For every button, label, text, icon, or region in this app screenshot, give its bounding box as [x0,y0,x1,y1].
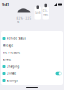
staticText: Settings [6,79,17,82]
staticText: Tire Pressure [2,51,20,54]
staticText: Charging [6,65,19,68]
staticText: Lock [35,11,40,14]
button[interactable]: Climate [1,70,63,77]
button[interactable]: Climate [42,6,49,19]
staticText: 9:41 [2,2,9,7]
button[interactable]: Vehicle Status [1,35,63,42]
button[interactable]: Settings [1,77,63,84]
staticText: Climate [6,72,16,75]
staticText: Vehicle Status [6,37,25,40]
button[interactable]: Tire Pressure [1,49,63,56]
button[interactable]: Charging [1,63,63,70]
staticText: 82% · 225 mi [16,17,31,24]
staticText: Service [2,58,11,61]
button[interactable]: Lock [34,6,41,19]
staticText: Mileage [2,44,13,47]
button[interactable]: Mileage [1,42,63,49]
button[interactable]: Service [1,56,63,63]
staticText: Climate [43,9,49,16]
